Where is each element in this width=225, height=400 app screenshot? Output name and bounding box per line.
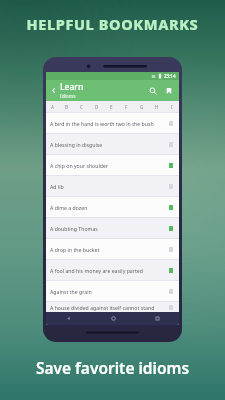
button[interactable]: A house divided against itself cannot st… (46, 302, 179, 312)
button[interactable]: A dime a dozen (46, 197, 179, 217)
button[interactable]: Back (46, 80, 60, 101)
button[interactable]: Ad lib (46, 176, 179, 196)
button[interactable]: A fool and his money are easily parted (46, 260, 179, 280)
button[interactable]: Home (91, 312, 135, 325)
staticText: A blessing in disguise (50, 141, 167, 148)
button[interactable]: A bird in the hand is worth two in the b… (46, 113, 179, 133)
button[interactable]: G (134, 101, 149, 112)
staticText: Idioms (60, 93, 76, 100)
staticText: B (65, 104, 69, 110)
staticText: A house divided against itself cannot st… (50, 304, 167, 311)
staticText: A chip on your shoulder (50, 162, 167, 169)
staticText: HELPFUL BOOKMARKS (0, 14, 225, 34)
button[interactable]: A (46, 101, 60, 112)
button[interactable]: I (164, 101, 179, 112)
staticText: Learn (60, 81, 84, 93)
staticText: Save favorite idioms (0, 357, 225, 378)
staticText: A doubting Thomas (50, 225, 167, 232)
staticText: F (125, 104, 128, 110)
button[interactable]: Bookmark (167, 287, 175, 295)
staticText: Ad lib (50, 183, 167, 190)
button[interactable]: Bookmark (167, 303, 175, 311)
button[interactable]: A doubting Thomas (46, 218, 179, 238)
staticText: A drop in the bucket (50, 246, 167, 253)
button[interactable]: Back (46, 312, 91, 325)
button[interactable]: Bookmark (167, 161, 175, 169)
button[interactable]: H (149, 101, 164, 112)
staticText: A (51, 104, 55, 110)
button[interactable]: Recent apps (135, 312, 179, 325)
button[interactable]: Bookmark (167, 203, 175, 211)
button[interactable]: Bookmark (167, 140, 175, 148)
staticText: 23:14 (164, 73, 176, 79)
staticText: H (155, 104, 159, 110)
button[interactable]: Bookmark (167, 182, 175, 190)
button[interactable]: C (74, 101, 89, 112)
staticText: Against the grain (50, 288, 167, 295)
staticText: A fool and his money are easily parted (50, 267, 167, 274)
button[interactable]: Bookmark (167, 119, 175, 127)
staticText: D (95, 104, 99, 110)
button[interactable]: Bookmark (167, 245, 175, 253)
staticText: C (80, 104, 83, 110)
button[interactable]: F (119, 101, 134, 112)
button[interactable]: D (89, 101, 104, 112)
staticText: A dime a dozen (50, 204, 167, 211)
staticText: E (110, 104, 113, 110)
staticText: I (171, 104, 173, 110)
button[interactable]: A chip on your shoulder (46, 155, 179, 175)
button[interactable]: Against the grain (46, 281, 179, 301)
staticText: A bird in the hand is worth two in the b… (50, 120, 167, 127)
button[interactable]: E (104, 101, 119, 112)
button[interactable]: Bookmarks (161, 80, 177, 101)
staticText: G (140, 104, 144, 110)
button[interactable]: A drop in the bucket (46, 239, 179, 259)
button[interactable]: Bookmark (167, 266, 175, 274)
button[interactable]: A blessing in disguise (46, 134, 179, 154)
button[interactable]: Search (145, 80, 161, 101)
button[interactable]: B (60, 101, 74, 112)
button[interactable]: Bookmark (167, 224, 175, 232)
